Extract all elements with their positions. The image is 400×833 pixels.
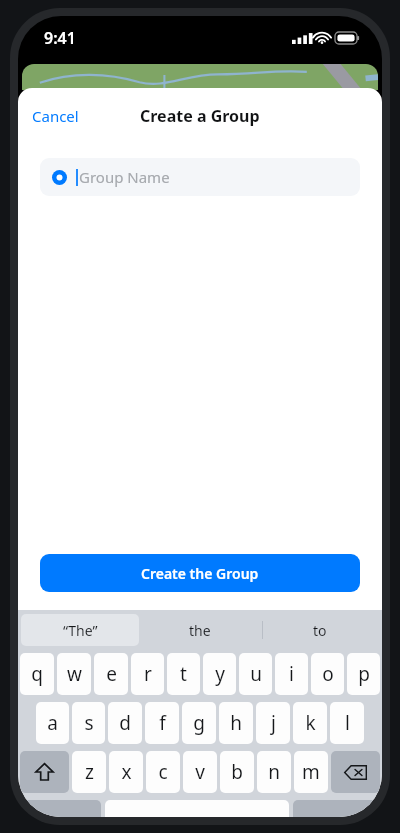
staticText: u	[250, 661, 262, 687]
button[interactable]: return	[293, 800, 380, 817]
button[interactable]: j	[256, 702, 290, 744]
staticText: the	[189, 621, 211, 640]
button[interactable]: the	[140, 610, 260, 650]
button[interactable]: Backspace	[331, 751, 380, 793]
staticText: “The”	[63, 621, 98, 640]
staticText: Create a Group	[140, 105, 260, 127]
staticText: return	[316, 812, 358, 817]
button[interactable]: u	[239, 653, 272, 695]
button[interactable]: i	[275, 653, 308, 695]
staticText: h	[230, 710, 242, 736]
staticText: i	[289, 661, 294, 687]
staticText: 9:41	[44, 27, 76, 49]
button[interactable]: e	[94, 653, 128, 695]
staticText: a	[47, 710, 58, 736]
button[interactable]: to	[260, 610, 380, 650]
button[interactable]: “The”	[21, 614, 139, 646]
staticText: d	[119, 710, 131, 736]
staticText: ABC	[47, 812, 74, 817]
button[interactable]: t	[167, 653, 200, 695]
button[interactable]: o	[311, 653, 344, 695]
button[interactable]: w	[57, 653, 91, 695]
button[interactable]: g	[182, 702, 216, 744]
staticText: o	[322, 661, 334, 687]
button[interactable]: Group Name	[40, 158, 360, 196]
staticText: k	[305, 710, 316, 736]
staticText: g	[193, 710, 205, 736]
staticText: s	[84, 710, 94, 736]
staticText: b	[231, 759, 243, 785]
staticText: r	[144, 661, 152, 687]
button[interactable]: Shift	[20, 751, 69, 793]
staticText: q	[31, 661, 43, 687]
button[interactable]: a	[36, 702, 69, 744]
staticText: z	[85, 759, 94, 785]
staticText: c	[158, 759, 168, 785]
button[interactable]: k	[293, 702, 327, 744]
staticText: f	[159, 710, 166, 736]
staticText: v	[195, 759, 205, 785]
staticText: j	[271, 710, 276, 736]
button[interactable]: n	[257, 751, 291, 793]
button[interactable]: h	[219, 702, 253, 744]
button[interactable]: p	[347, 653, 380, 695]
button[interactable]: r	[131, 653, 164, 695]
staticText: Cancel	[32, 106, 79, 126]
staticText: Create the Group	[141, 564, 259, 583]
button[interactable]: l	[330, 702, 364, 744]
button[interactable]: c	[146, 751, 180, 793]
button[interactable]: v	[183, 751, 217, 793]
staticText: l	[345, 710, 350, 736]
staticText: n	[268, 759, 280, 785]
staticText: x	[121, 759, 132, 785]
button[interactable]: Cancel	[18, 100, 93, 132]
button[interactable]: x	[109, 751, 143, 793]
button[interactable]: s	[72, 702, 105, 744]
staticText: p	[358, 661, 370, 687]
button[interactable]: q	[20, 653, 54, 695]
button[interactable]: f	[145, 702, 179, 744]
button[interactable]: z	[72, 751, 106, 793]
button[interactable]: d	[108, 702, 142, 744]
staticText: w	[67, 661, 82, 687]
staticText: to	[313, 621, 327, 640]
button[interactable]: ABC	[20, 800, 101, 817]
button[interactable]: b	[220, 751, 254, 793]
button[interactable]: m	[294, 751, 328, 793]
staticText: t	[180, 661, 187, 687]
staticText: e	[106, 661, 117, 687]
staticText: Group Name	[79, 167, 170, 187]
button[interactable]: Create the Group	[40, 554, 360, 592]
staticText: m	[302, 759, 320, 785]
button[interactable]: y	[203, 653, 236, 695]
staticText: y	[215, 661, 225, 687]
